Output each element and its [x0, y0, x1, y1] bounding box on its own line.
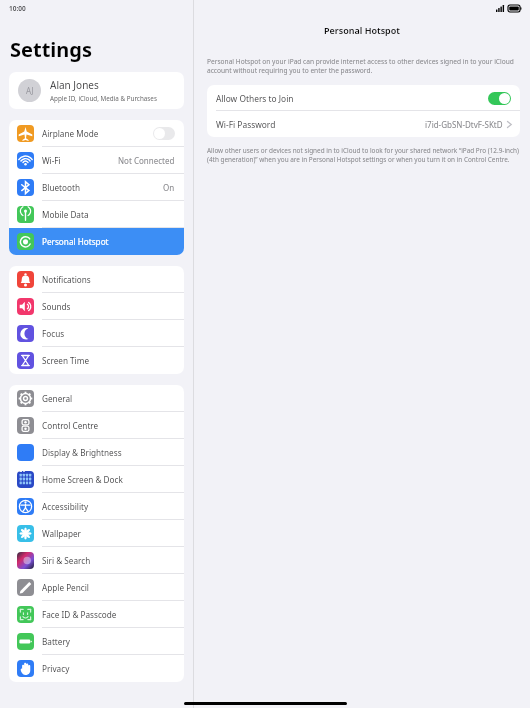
staticText: Airplane Mode	[42, 128, 99, 139]
staticText: Apple Pencil	[42, 582, 89, 593]
button[interactable]: Wallpaper	[9, 520, 184, 547]
button[interactable]: Allow Others to Join	[207, 85, 520, 111]
staticText: AJ	[26, 85, 34, 96]
button[interactable]: Control Centre	[9, 412, 184, 439]
staticText: Alan Jones	[50, 78, 99, 92]
staticText: Wi-Fi Password	[216, 119, 276, 130]
button[interactable]: Face ID & Passcode	[9, 601, 184, 628]
button[interactable]: Display & Brightness	[9, 439, 184, 466]
staticText: Mobile Data	[42, 209, 89, 220]
staticText: Display & Brightness	[42, 447, 122, 458]
button[interactable]: Airplane Mode	[9, 120, 184, 147]
staticText: Screen Time	[42, 355, 90, 366]
staticText: Sounds	[42, 301, 71, 312]
staticText: Allow other users or devices not signed …	[207, 146, 520, 164]
staticText: Accessibility	[42, 501, 89, 512]
staticText: Bluetooth	[42, 182, 80, 193]
button[interactable]: Apple Pencil	[9, 574, 184, 601]
staticText: Not Connected	[118, 155, 175, 166]
button[interactable]: Notifications	[9, 266, 184, 293]
button[interactable]: Mobile Data	[9, 201, 184, 228]
staticText: AA	[17, 466, 25, 474]
staticText: Privacy	[42, 663, 70, 674]
button[interactable]: Privacy	[9, 655, 184, 682]
staticText: On	[163, 182, 175, 193]
button[interactable]: Home Screen & Dock	[9, 466, 184, 493]
staticText: Control Centre	[42, 420, 99, 431]
button[interactable]: Focus	[9, 320, 184, 347]
staticText: Battery	[42, 636, 71, 647]
staticText: Personal Hotspot	[42, 236, 109, 247]
staticText: Personal Hotspot	[194, 24, 530, 36]
button[interactable]: Wi-Fi	[9, 147, 184, 174]
button[interactable]: Screen Time	[9, 347, 184, 374]
button[interactable]: Wi-Fi Password	[207, 111, 520, 137]
staticText: Face ID & Passcode	[42, 609, 117, 620]
staticText: Wallpaper	[42, 528, 81, 539]
button[interactable]: Sounds	[9, 293, 184, 320]
button[interactable]: Toggle off	[153, 127, 175, 140]
staticText: General	[42, 393, 73, 404]
staticText: Personal Hotspot on your iPad can provid…	[207, 57, 520, 75]
staticText: Settings	[10, 36, 92, 63]
staticText: Wi-Fi	[42, 155, 61, 166]
staticText: Siri & Search	[42, 555, 91, 566]
button[interactable]: Bluetooth	[9, 174, 184, 201]
button[interactable]: Battery	[9, 628, 184, 655]
staticText: i7id-GbSN-DtvF-SKtD	[425, 119, 503, 130]
staticText: 10:00	[9, 4, 26, 13]
staticText: Focus	[42, 328, 65, 339]
staticText: Home Screen & Dock	[42, 474, 123, 485]
button[interactable]: Personal Hotspot	[9, 228, 184, 255]
button[interactable]: Toggle on	[488, 92, 511, 105]
staticText: Notifications	[42, 274, 91, 285]
button[interactable]: Accessibility	[9, 493, 184, 520]
staticText: Apple ID, iCloud, Media & Purchases	[50, 94, 157, 103]
button[interactable]: AJ	[9, 72, 184, 109]
button[interactable]: General	[9, 385, 184, 412]
button[interactable]: Siri & Search	[9, 547, 184, 574]
staticText: Allow Others to Join	[216, 93, 294, 104]
